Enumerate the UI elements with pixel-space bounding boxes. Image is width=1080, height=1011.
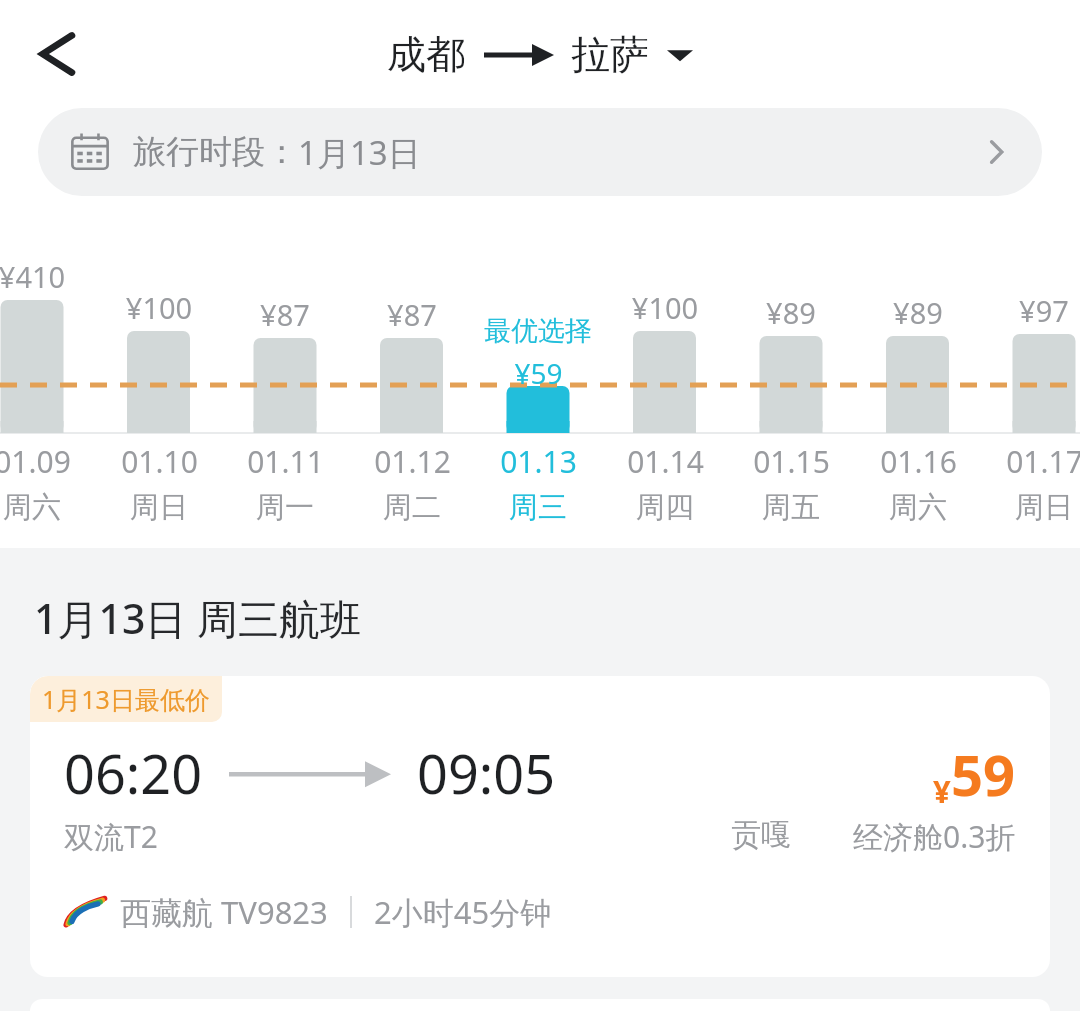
staticText: 09:05 bbox=[417, 736, 556, 810]
staticText: 1月13日最低价 bbox=[42, 682, 210, 716]
button[interactable]: 01.11 bbox=[210, 441, 360, 526]
staticText: ¥97 bbox=[969, 291, 1080, 330]
staticText: ¥89 bbox=[716, 293, 866, 332]
staticText: 1月13日 bbox=[298, 130, 421, 175]
staticText: 周六 bbox=[3, 489, 61, 526]
staticText: 经济舱0.3折 bbox=[853, 816, 1016, 857]
staticText: 双流T2 bbox=[64, 816, 158, 857]
staticText: ¥410 bbox=[0, 257, 107, 296]
button[interactable]: 01.13 bbox=[463, 441, 613, 526]
staticText: 拉萨 bbox=[571, 30, 649, 79]
staticText: 01.13 bbox=[500, 441, 577, 482]
staticText: 旅行时段： bbox=[133, 131, 298, 173]
staticText: 01.14 bbox=[627, 441, 704, 482]
button[interactable]: 01.12 bbox=[337, 441, 487, 526]
staticText: 01.15 bbox=[753, 441, 830, 482]
button[interactable]: 01.16 bbox=[843, 441, 993, 526]
button[interactable]: 01.17 bbox=[969, 441, 1080, 526]
staticText: 周二 bbox=[383, 489, 441, 526]
staticText: ¥89 bbox=[843, 293, 993, 332]
staticText: 成都 bbox=[387, 30, 465, 79]
button[interactable]: 01.09 bbox=[0, 441, 107, 526]
staticText: 周日 bbox=[1015, 489, 1073, 526]
button[interactable]: 01.14 bbox=[590, 441, 740, 526]
staticText: 周一 bbox=[256, 489, 314, 526]
staticText: ¥ bbox=[933, 770, 951, 812]
staticText: 06:20 bbox=[64, 736, 203, 810]
staticText: 周五 bbox=[762, 489, 820, 526]
staticText: 01.10 bbox=[121, 441, 198, 482]
staticText: ¥59 bbox=[514, 354, 563, 392]
staticText: 周日 bbox=[130, 489, 188, 526]
staticText: 西藏航 TV9823 bbox=[120, 891, 328, 933]
staticText: 贡嘎 bbox=[731, 816, 791, 854]
staticText: ¥100 bbox=[590, 288, 740, 327]
staticText: 周三 bbox=[509, 489, 567, 526]
staticText: 01.11 bbox=[247, 441, 324, 482]
staticText: 1月13日 周三航班 bbox=[34, 590, 362, 646]
staticText: 最优选择 bbox=[484, 314, 592, 348]
staticText: ¥87 bbox=[337, 295, 487, 334]
staticText: 2小时45分钟 bbox=[374, 891, 552, 933]
staticText: 周四 bbox=[636, 489, 694, 526]
staticText: 01.16 bbox=[880, 441, 957, 482]
button[interactable]: 01.15 bbox=[716, 441, 866, 526]
staticText: 59 bbox=[951, 736, 1016, 812]
button[interactable]: 成都 bbox=[387, 30, 693, 79]
button[interactable]: 1月13日最低价 bbox=[30, 676, 1050, 977]
staticText: ¥87 bbox=[210, 295, 360, 334]
staticText: 周六 bbox=[889, 489, 947, 526]
button[interactable]: 旅行时段： bbox=[38, 108, 1042, 196]
staticText: 01.09 bbox=[0, 441, 71, 482]
button[interactable]: 01.10 bbox=[84, 441, 234, 526]
button[interactable]: 最优选择 bbox=[463, 314, 613, 392]
staticText: 01.12 bbox=[374, 441, 451, 482]
staticText: ¥100 bbox=[84, 288, 234, 327]
staticText: 01.17 bbox=[1006, 441, 1080, 482]
button[interactable]: Back bbox=[22, 22, 86, 86]
